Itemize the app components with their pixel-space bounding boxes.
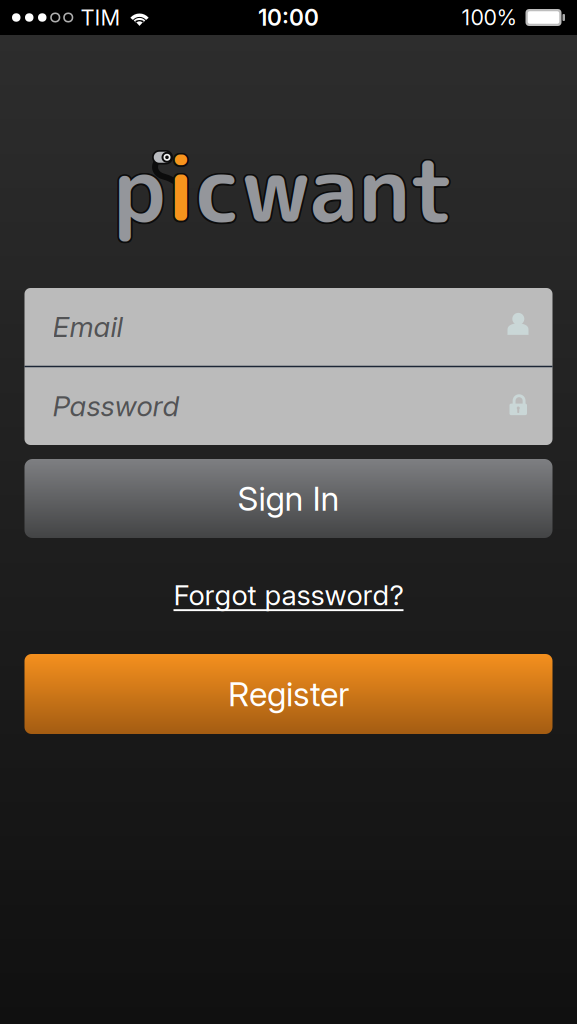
staticText: cwant bbox=[197, 128, 456, 251]
button[interactable]: Sign In bbox=[24, 459, 552, 538]
staticText: TIM bbox=[80, 4, 120, 31]
staticText: Register bbox=[228, 674, 349, 714]
staticText: Sign In bbox=[237, 478, 339, 519]
staticText: i bbox=[168, 127, 198, 250]
staticText: p bbox=[112, 128, 165, 251]
staticText: 10:00 bbox=[258, 4, 319, 31]
staticText: cwant bbox=[196, 125, 455, 248]
staticText: i bbox=[167, 126, 197, 248]
staticText: cwant bbox=[198, 127, 457, 250]
staticText: Email bbox=[52, 310, 122, 344]
button[interactable]: Register bbox=[24, 654, 552, 734]
button[interactable]: Email bbox=[24, 288, 552, 366]
staticText: p bbox=[115, 127, 168, 250]
staticText: i bbox=[165, 128, 195, 251]
staticText: Forgot password? bbox=[173, 578, 403, 612]
staticText: Password bbox=[52, 389, 179, 423]
staticText: i bbox=[164, 127, 194, 250]
staticText: p bbox=[113, 127, 166, 250]
staticText: 100% bbox=[461, 5, 517, 30]
staticText: p bbox=[112, 126, 165, 248]
staticText: p bbox=[113, 129, 166, 251]
staticText: cwant bbox=[196, 127, 455, 250]
staticText: i bbox=[167, 128, 197, 251]
staticText: p bbox=[114, 126, 167, 248]
staticText: i bbox=[165, 126, 195, 248]
staticText: p bbox=[114, 128, 167, 251]
button[interactable]: Forgot password? bbox=[24, 573, 552, 617]
staticText: cwant bbox=[195, 126, 454, 248]
staticText: p bbox=[111, 127, 164, 250]
staticText: cwant bbox=[197, 126, 456, 248]
staticText: cwant bbox=[194, 127, 453, 250]
staticText: p bbox=[113, 125, 166, 248]
staticText: cwant bbox=[196, 129, 455, 251]
button[interactable]: Password bbox=[24, 367, 552, 445]
staticText: i bbox=[166, 127, 196, 250]
staticText: i bbox=[166, 129, 196, 251]
staticText: i bbox=[166, 125, 196, 248]
staticText: cwant bbox=[195, 128, 454, 251]
